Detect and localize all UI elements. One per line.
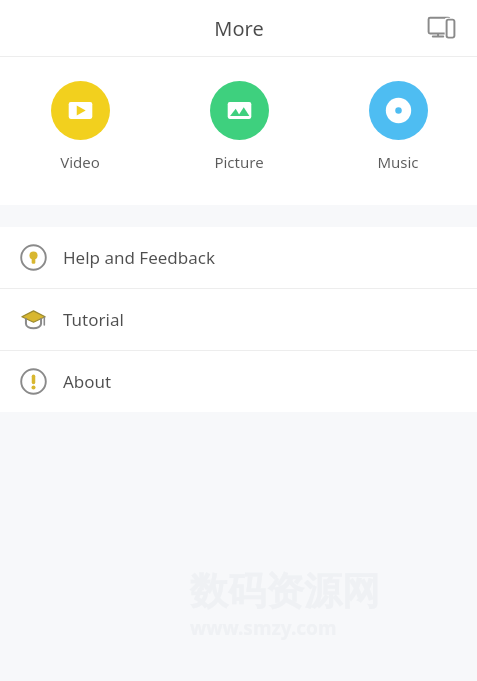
staticText: Picture: [214, 152, 264, 172]
staticText: Video: [60, 152, 100, 172]
staticText: About: [63, 370, 112, 393]
staticText: Tutorial: [63, 308, 124, 331]
button[interactable]: Cast to device: [421, 6, 465, 50]
button[interactable]: Tutorial: [0, 289, 477, 350]
staticText: More: [214, 15, 264, 42]
button[interactable]: Picture: [179, 79, 299, 174]
button[interactable]: Video: [20, 79, 140, 174]
staticText: Help and Feedback: [63, 246, 216, 269]
button[interactable]: About: [0, 351, 477, 412]
staticText: 数码资源网: [190, 567, 380, 615]
staticText: www.smzy.com: [190, 615, 337, 641]
button[interactable]: Help and Feedback: [0, 227, 477, 288]
staticText: Music: [377, 152, 419, 172]
button[interactable]: Music: [338, 79, 458, 174]
